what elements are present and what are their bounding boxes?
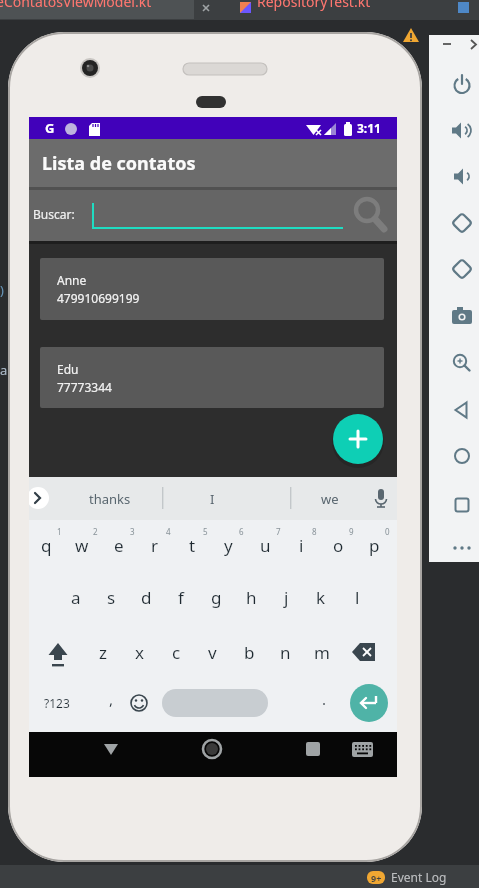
staticText: 9+ xyxy=(371,872,382,884)
button[interactable] xyxy=(348,736,376,764)
staticText: 7 xyxy=(276,526,281,537)
staticText: 3 xyxy=(130,526,135,537)
button[interactable]: b xyxy=(231,631,267,673)
button[interactable]: Event Log xyxy=(391,865,461,888)
button[interactable] xyxy=(349,638,381,668)
button[interactable]: . xyxy=(315,680,333,718)
button[interactable] xyxy=(92,202,343,230)
staticText: b xyxy=(244,641,255,664)
staticText: r xyxy=(151,534,159,557)
staticText: s xyxy=(107,586,116,609)
staticText: j xyxy=(284,586,289,609)
button[interactable] xyxy=(97,736,125,764)
staticText: c xyxy=(172,641,181,664)
staticText: Anne xyxy=(57,272,87,286)
staticText: 3:11 xyxy=(357,120,381,136)
button[interactable]: v xyxy=(194,631,230,673)
staticText: x xyxy=(135,641,144,664)
button[interactable]: k xyxy=(303,576,339,618)
button[interactable]: i xyxy=(283,524,319,566)
staticText: z xyxy=(99,641,107,664)
button[interactable]: e xyxy=(101,524,137,566)
staticText: 6 xyxy=(239,526,244,537)
button[interactable] xyxy=(300,736,328,764)
staticText: 4 xyxy=(166,526,171,537)
staticText: . xyxy=(322,689,327,709)
button[interactable] xyxy=(128,690,150,716)
staticText: 8 xyxy=(312,526,317,537)
button[interactable] xyxy=(162,689,268,717)
button[interactable]: c xyxy=(158,631,194,673)
staticText: ?123 xyxy=(44,695,70,711)
button[interactable] xyxy=(40,347,384,408)
staticText: RepositoryTest.kt xyxy=(257,0,371,11)
button[interactable] xyxy=(0,0,194,19)
staticText: d xyxy=(141,586,152,609)
staticText: t xyxy=(189,534,196,557)
staticText: I xyxy=(210,490,215,508)
staticText: 9 xyxy=(349,526,354,537)
staticText: Edu xyxy=(57,361,79,375)
button[interactable]: , xyxy=(102,680,120,718)
button[interactable] xyxy=(40,258,384,320)
button[interactable]: x xyxy=(121,631,157,673)
staticText: Lista de contatos xyxy=(42,151,196,176)
button[interactable]: u xyxy=(247,524,283,566)
button[interactable]: q xyxy=(28,524,64,566)
button[interactable] xyxy=(44,638,74,668)
staticText: a xyxy=(71,586,81,609)
staticText: g xyxy=(211,586,222,609)
button[interactable]: we xyxy=(300,477,360,520)
button[interactable]: f xyxy=(163,576,199,618)
button[interactable]: j xyxy=(268,576,304,618)
staticText: m xyxy=(314,641,330,664)
staticText: we xyxy=(321,490,339,508)
button[interactable]: t xyxy=(174,524,210,566)
staticText: 2 xyxy=(93,526,98,537)
button[interactable]: thanks xyxy=(70,477,150,520)
button[interactable]: m xyxy=(304,631,340,673)
button[interactable]: h xyxy=(233,576,269,618)
staticText: thanks xyxy=(89,490,131,508)
staticText: q xyxy=(41,534,52,557)
staticText: i xyxy=(299,534,304,557)
staticText: a xyxy=(0,361,8,379)
staticText: 1 xyxy=(57,526,62,537)
button[interactable]: l xyxy=(339,576,375,618)
button[interactable] xyxy=(350,684,388,722)
staticText: u xyxy=(260,534,271,557)
staticText: , xyxy=(109,689,114,709)
button[interactable]: g xyxy=(198,576,234,618)
button[interactable]: z xyxy=(85,631,121,673)
staticText: f xyxy=(178,586,184,609)
button[interactable] xyxy=(333,414,383,464)
button[interactable] xyxy=(198,736,226,764)
staticText: n xyxy=(280,641,291,664)
staticText: o xyxy=(333,534,344,557)
button[interactable]: a xyxy=(58,576,94,618)
button[interactable]: w xyxy=(64,524,100,566)
staticText: h xyxy=(246,586,257,609)
staticText: Buscar: xyxy=(33,206,75,222)
staticText: ) xyxy=(0,281,4,299)
staticText: v xyxy=(208,641,217,664)
staticText: p xyxy=(369,534,380,557)
staticText: e xyxy=(114,534,124,557)
staticText: 0 xyxy=(385,526,390,537)
button[interactable]: 9+ xyxy=(367,871,385,884)
button[interactable]: y xyxy=(210,524,246,566)
staticText: 5 xyxy=(203,526,208,537)
button[interactable]: o xyxy=(320,524,356,566)
staticText: 77773344 xyxy=(57,379,112,393)
staticText: 479910699199 xyxy=(57,290,140,304)
staticText: k xyxy=(316,586,326,609)
staticText: Event Log xyxy=(391,869,447,885)
button[interactable]: r xyxy=(137,524,173,566)
button[interactable]: s xyxy=(93,576,129,618)
button[interactable]: d xyxy=(128,576,164,618)
button[interactable]: I xyxy=(182,477,242,520)
staticText: l xyxy=(355,586,360,609)
button[interactable]: n xyxy=(267,631,303,673)
button[interactable]: ?123 xyxy=(38,684,76,722)
button[interactable]: p xyxy=(356,524,392,566)
